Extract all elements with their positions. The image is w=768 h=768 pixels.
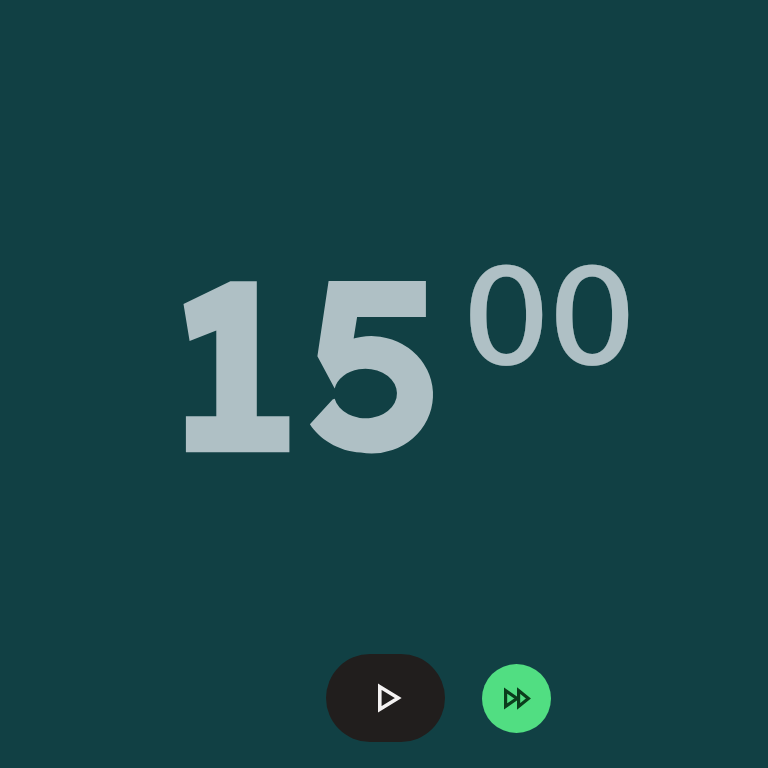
button[interactable]: Add one minute bbox=[482, 664, 551, 733]
button[interactable]: Start timer bbox=[326, 654, 445, 742]
